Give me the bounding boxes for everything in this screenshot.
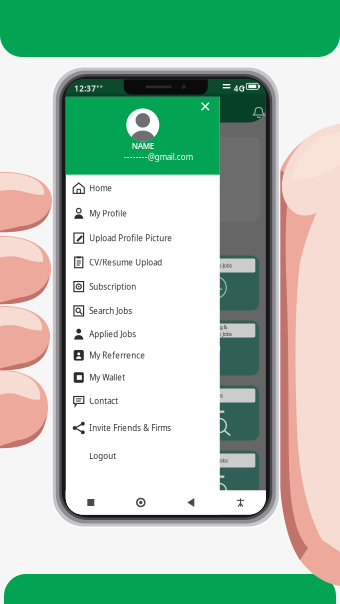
staticText: --------@gmail.com <box>124 152 193 162</box>
button[interactable]: Invite Friends & Firms <box>66 417 220 439</box>
button[interactable]: Logout <box>66 445 220 467</box>
button[interactable]: Back <box>166 490 216 514</box>
button[interactable]: Home <box>116 490 166 514</box>
button[interactable]: Home <box>66 177 220 199</box>
staticText: Upload Profile Picture <box>89 233 172 243</box>
staticText: My Wallet <box>89 372 125 383</box>
staticText: Part Time Jobs <box>198 262 232 269</box>
staticText: Office Jobs <box>202 457 228 464</box>
button[interactable]: Accessibility <box>216 490 266 514</box>
staticText: CV/Resume Upload <box>89 257 162 268</box>
staticText: 12:37 <box>74 83 96 94</box>
staticText: 4G <box>234 83 245 94</box>
button[interactable]: My Wallet <box>66 366 220 388</box>
staticText: NAME <box>132 141 154 151</box>
staticText: Logout <box>89 450 116 461</box>
button[interactable]: CV/Resume Upload <box>66 251 220 273</box>
staticText: Applied Jobs <box>89 329 136 339</box>
button[interactable]: Close menu <box>197 98 214 115</box>
staticText: Invite Friends & Firms <box>89 423 171 433</box>
button[interactable]: My Referrence <box>66 344 220 366</box>
staticText: Banking & Accounts Jobs <box>198 323 232 338</box>
button[interactable]: Applied Jobs <box>66 323 220 345</box>
staticText: IT Jobs <box>207 392 223 399</box>
staticText: My Profile <box>89 208 127 219</box>
button[interactable]: Contact <box>66 390 220 412</box>
staticText: Contact <box>89 395 118 406</box>
staticText: My Referrence <box>89 350 145 361</box>
staticText: Search Jobs <box>89 306 132 316</box>
staticText: Subscription <box>89 281 136 292</box>
button[interactable]: Search Jobs <box>66 300 220 322</box>
button[interactable]: Upload Profile Picture <box>66 227 220 249</box>
button[interactable]: Subscription <box>66 276 220 298</box>
staticText: Home <box>89 183 112 193</box>
button[interactable]: My Profile <box>66 202 220 224</box>
button[interactable]: Recents <box>66 490 116 514</box>
